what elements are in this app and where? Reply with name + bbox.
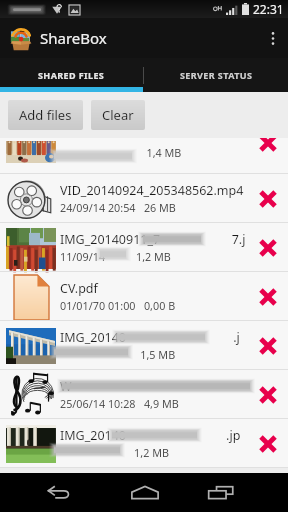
button[interactable]: VID_20140924_205348562.mp4 bbox=[0, 174, 288, 223]
staticText: CV.pdf bbox=[60, 280, 98, 297]
button[interactable]: Add files bbox=[8, 100, 83, 130]
button[interactable]: IMG_20140 .jpg bbox=[0, 321, 288, 370]
staticText: 11/09/14 1,2 MB bbox=[60, 249, 171, 264]
button[interactable]: Back bbox=[0, 473, 115, 512]
button[interactable]: IMG_20140 .jpg bbox=[0, 419, 288, 468]
button[interactable]: Clear bbox=[91, 100, 145, 130]
button[interactable]: SERVER STATUS bbox=[144, 58, 288, 92]
button[interactable]: 1,4 MB bbox=[0, 138, 288, 174]
staticText: 01/01/70 01:00 0,00 B bbox=[60, 298, 176, 313]
staticText: IMG_20140 .jpg bbox=[60, 427, 247, 444]
staticText: Clear bbox=[102, 106, 134, 124]
button[interactable]: Home bbox=[115, 473, 174, 512]
staticText: IMG_20140 .jpg bbox=[60, 329, 247, 346]
button[interactable]: Remove bbox=[247, 138, 288, 161]
button[interactable]: Remove bbox=[247, 419, 288, 468]
staticText: 25/06/14 10:28 4,9 MB bbox=[60, 396, 179, 411]
button[interactable]: CV.pdf bbox=[0, 272, 288, 321]
staticText: 1,2 MB bbox=[60, 445, 169, 460]
staticText: SHARED FILES bbox=[38, 69, 105, 81]
staticText: VID_20140924_205348562.mp4 bbox=[60, 182, 244, 199]
button[interactable]: W bbox=[0, 370, 288, 419]
button[interactable]: SHARED FILES bbox=[0, 58, 143, 92]
staticText: SERVER STATUS bbox=[180, 69, 253, 81]
button[interactable]: Remove bbox=[247, 223, 288, 272]
button[interactable]: Remove bbox=[247, 272, 288, 321]
staticText: ShareBox bbox=[40, 28, 107, 48]
staticText: IMG_20140911_7 7.jpg bbox=[60, 231, 247, 248]
staticText: Add files bbox=[19, 106, 72, 124]
button[interactable]: More options bbox=[258, 18, 288, 58]
staticText: 22:31 bbox=[253, 1, 284, 17]
button[interactable]: Remove bbox=[247, 370, 288, 419]
button[interactable]: Recents bbox=[174, 473, 267, 512]
button[interactable]: Remove bbox=[247, 321, 288, 370]
staticText: W bbox=[60, 378, 72, 395]
button[interactable]: Remove bbox=[247, 174, 288, 223]
button[interactable]: IMG_20140911_7 7.jpg bbox=[0, 223, 288, 272]
staticText: 24/09/14 20:54 26 MB bbox=[60, 200, 176, 215]
staticText: 1,5 MB bbox=[60, 347, 176, 362]
staticText: 1,4 MB bbox=[60, 145, 182, 160]
